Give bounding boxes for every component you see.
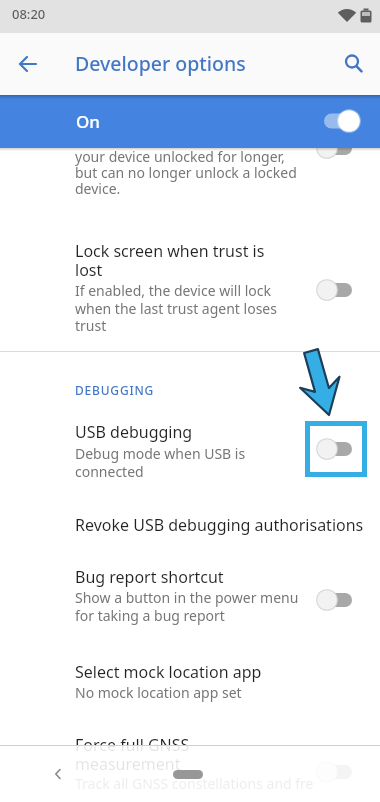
- button[interactable]: [173, 770, 203, 779]
- staticText: Track all GNSS constellations and fre: [75, 774, 335, 793]
- staticText: Show a button in the power menu for taki…: [75, 588, 310, 625]
- staticText: DEBUGGING: [75, 382, 155, 398]
- button[interactable]: [342, 52, 366, 76]
- staticText: Debug mode when USB is connected: [75, 444, 305, 481]
- staticText: Bug report shortcut: [75, 566, 224, 588]
- button[interactable]: [318, 137, 354, 159]
- staticText: 08:20: [12, 5, 46, 23]
- button[interactable]: [0, 652, 380, 722]
- staticText: USB debugging: [75, 421, 193, 443]
- staticText: No mock location app set: [75, 683, 242, 702]
- staticText: Revoke USB debugging authorisations: [75, 514, 364, 536]
- button[interactable]: [318, 761, 354, 783]
- staticText: Developer options: [75, 50, 246, 77]
- staticText: Select mock location app: [75, 661, 262, 683]
- button[interactable]: [17, 53, 39, 75]
- staticText: On: [76, 110, 100, 133]
- staticText: If enabled, the device will lock when th…: [75, 281, 310, 335]
- button[interactable]: [318, 589, 354, 611]
- staticText: Force full GNSS measurement: [75, 734, 310, 775]
- button[interactable]: On: [0, 95, 380, 148]
- button[interactable]: [0, 228, 380, 350]
- staticText: your device unlocked for longer, but can…: [75, 147, 297, 198]
- button[interactable]: [50, 766, 66, 782]
- button[interactable]: [0, 558, 380, 644]
- button[interactable]: [0, 726, 380, 802]
- button[interactable]: [0, 496, 380, 558]
- button[interactable]: [324, 110, 360, 132]
- button[interactable]: [318, 438, 354, 460]
- staticText: Lock screen when trust is lost: [75, 240, 310, 281]
- button[interactable]: [0, 408, 380, 496]
- button[interactable]: [0, 148, 380, 210]
- button[interactable]: [318, 279, 354, 301]
